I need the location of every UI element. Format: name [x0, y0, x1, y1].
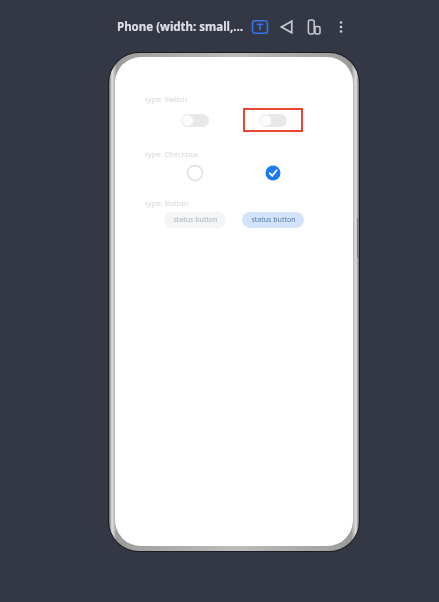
staticText: Phone (width: small,…	[117, 19, 244, 35]
button[interactable]: More options	[332, 18, 350, 36]
button[interactable]: Phone (width: small,…	[117, 14, 244, 40]
button[interactable]: Resize device	[304, 17, 324, 37]
staticText: type: Checkbox	[145, 149, 199, 159]
staticText: type: Button	[145, 198, 189, 208]
button[interactable]: Run preview	[277, 17, 297, 37]
button[interactable]: Toggle switch	[259, 114, 287, 127]
button[interactable]: status button	[242, 212, 304, 228]
button[interactable]: Unchecked checkbox	[185, 163, 205, 183]
staticText: status button	[173, 215, 218, 225]
staticText: status button	[251, 215, 296, 225]
button[interactable]: Toggle switch	[181, 114, 209, 127]
staticText: type: Switch	[145, 94, 188, 104]
button[interactable]: Checked checkbox	[263, 163, 283, 183]
button[interactable]: status button	[164, 212, 226, 228]
button[interactable]: Text scale	[250, 18, 270, 36]
